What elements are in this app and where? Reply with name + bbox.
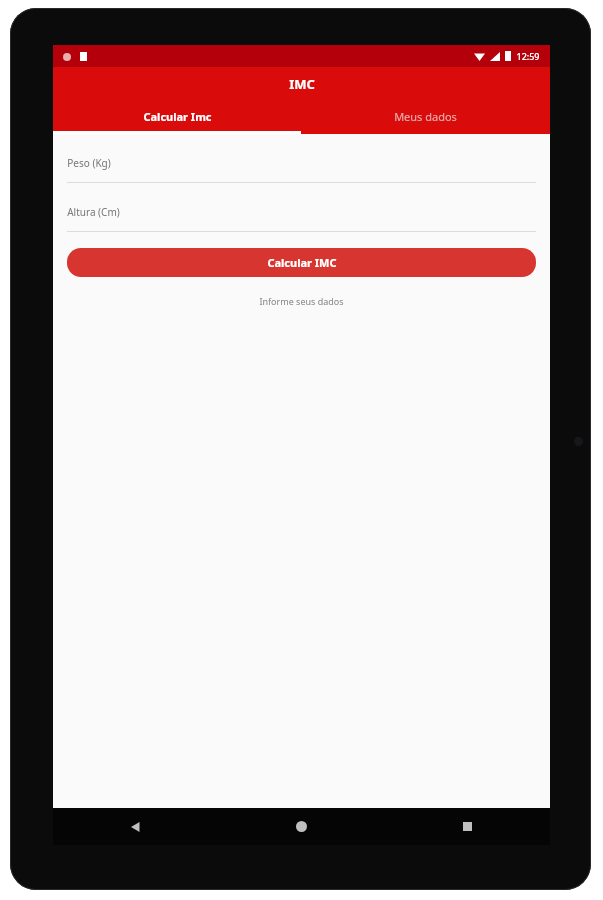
- button[interactable]: Home: [218, 808, 384, 845]
- staticText: Altura (Cm): [67, 205, 120, 219]
- staticText: Informe seus dados: [259, 295, 344, 307]
- staticText: Calcular IMC: [267, 255, 337, 270]
- staticText: Peso (Kg): [67, 156, 111, 170]
- button[interactable]: Calcular Imc: [53, 101, 301, 131]
- button[interactable]: Recent apps: [384, 808, 550, 845]
- button[interactable]: Meus dados: [301, 101, 550, 131]
- staticText: IMC: [289, 75, 315, 93]
- button[interactable]: Peso (Kg): [67, 156, 536, 183]
- button[interactable]: Altura (Cm): [67, 205, 536, 232]
- staticText: Calcular Imc: [143, 109, 212, 124]
- staticText: Meus dados: [394, 109, 457, 124]
- staticText: 12:59: [516, 50, 540, 62]
- button[interactable]: Back: [53, 808, 218, 845]
- button[interactable]: Calcular IMC: [67, 248, 536, 277]
